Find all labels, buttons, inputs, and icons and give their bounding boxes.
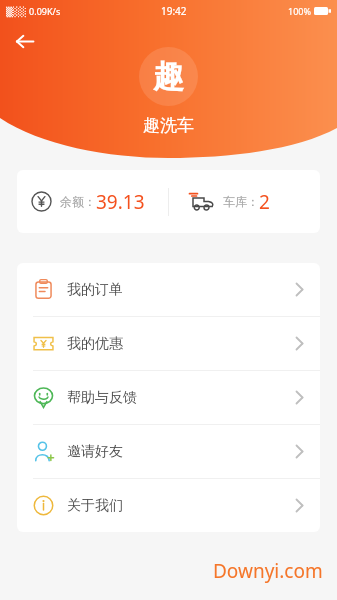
button[interactable]: 车库： xyxy=(169,170,320,233)
staticText: 19:42 xyxy=(161,4,187,18)
staticText: 我的订单 xyxy=(67,281,123,299)
staticText: 车库： xyxy=(223,194,259,209)
staticText: ▒░░ 0.09K/s xyxy=(6,5,61,17)
staticText: 帮助与反馈 xyxy=(67,389,137,407)
staticText: 趣 xyxy=(153,57,184,96)
staticText: 我的优惠 xyxy=(67,335,123,353)
button[interactable]: 邀请好友 xyxy=(17,425,320,479)
button[interactable]: 我的优惠 xyxy=(17,317,320,371)
staticText: 2 xyxy=(259,189,270,215)
staticText: 39.13 xyxy=(96,189,145,215)
staticText: 100% xyxy=(288,5,311,17)
staticText: 邀请好友 xyxy=(67,443,123,461)
staticText: 余额： xyxy=(60,194,96,209)
staticText: 关于我们 xyxy=(67,497,123,515)
button[interactable]: 帮助与反馈 xyxy=(17,371,320,425)
button[interactable]: 我的订单 xyxy=(17,263,320,317)
staticText: Downyi.com xyxy=(213,558,323,584)
button[interactable]: Back xyxy=(7,24,41,58)
staticText: 趣洗车 xyxy=(143,115,194,136)
button[interactable]: 余额： xyxy=(17,170,168,233)
button[interactable]: 关于我们 xyxy=(17,479,320,532)
